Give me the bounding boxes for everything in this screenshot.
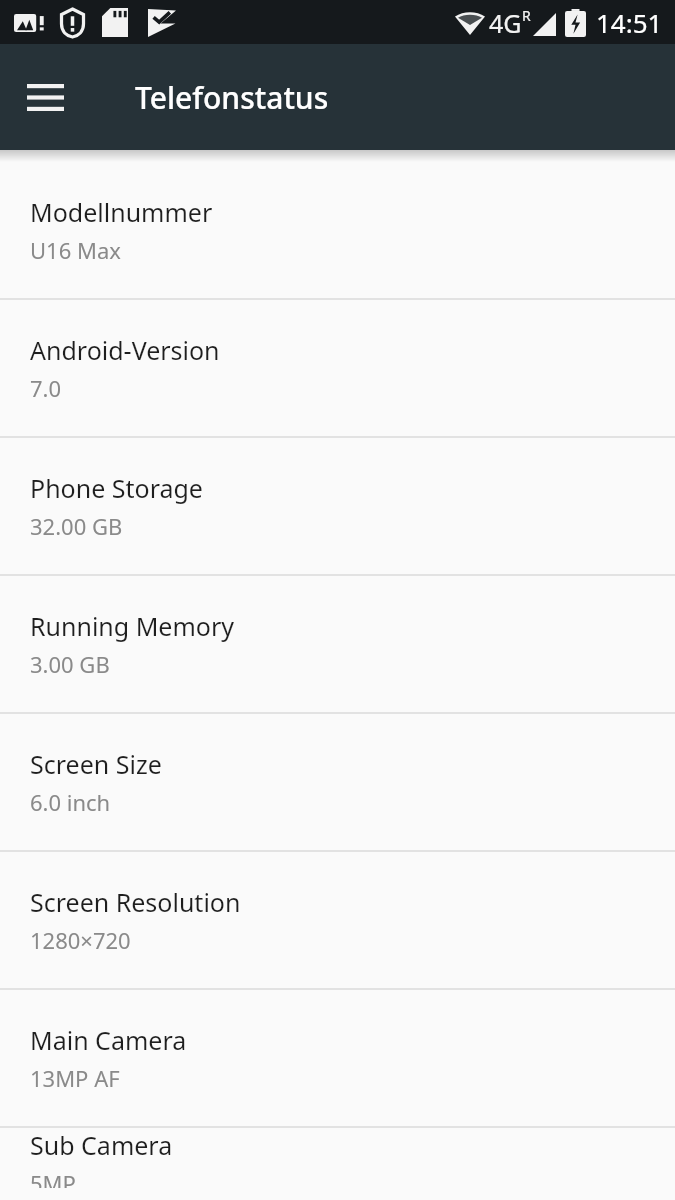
staticText: 32.00 GB	[30, 511, 123, 541]
staticText: 14:51	[596, 5, 663, 40]
button[interactable]: Main Camera	[0, 990, 675, 1128]
staticText: Screen Size	[30, 747, 162, 781]
staticText: U16 Max	[30, 235, 121, 265]
button[interactable]: Android-Version	[0, 300, 675, 438]
button[interactable]: Running Memory	[0, 576, 675, 714]
staticText: Phone Storage	[30, 471, 203, 505]
staticText: 13MP AF	[30, 1063, 120, 1093]
button[interactable]: Phone Storage	[0, 438, 675, 576]
button[interactable]: Screen Size	[0, 714, 675, 852]
staticText: R	[522, 6, 531, 25]
staticText: 6.0 inch	[30, 787, 111, 817]
staticText: Running Memory	[30, 609, 235, 643]
staticText: 1280×720	[30, 925, 131, 955]
staticText: Main Camera	[30, 1023, 187, 1057]
staticText: Android-Version	[30, 333, 220, 367]
staticText: 3.00 GB	[30, 649, 110, 679]
staticText: 5MP	[30, 1168, 76, 1188]
staticText: Modellnummer	[30, 195, 213, 229]
staticText: Screen Resolution	[30, 885, 241, 919]
button[interactable]: Modellnummer	[0, 162, 675, 300]
staticText: 4G	[489, 6, 522, 40]
staticText: 7.0	[30, 373, 62, 403]
staticText: Sub Camera	[30, 1128, 173, 1162]
button[interactable]: Sub Camera	[0, 1128, 675, 1188]
staticText: Telefonstatus	[135, 77, 329, 118]
button[interactable]: Open navigation menu	[18, 70, 72, 124]
button[interactable]: Screen Resolution	[0, 852, 675, 990]
